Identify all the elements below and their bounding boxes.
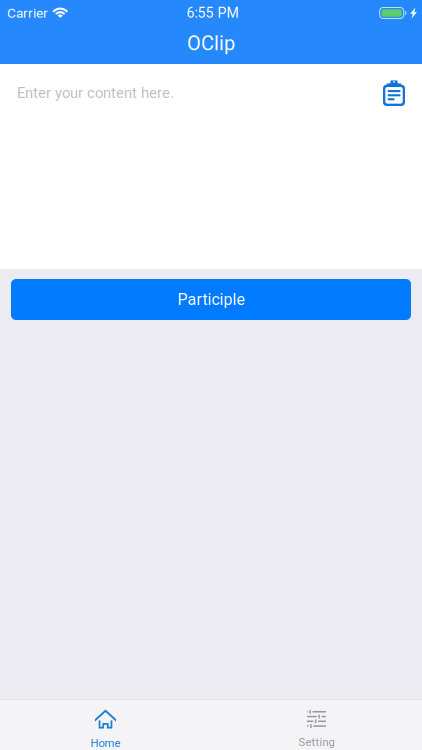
button[interactable]: Paste from clipboard <box>379 76 409 110</box>
staticText: Enter your content here. <box>17 84 174 102</box>
staticText: OClip <box>187 32 235 55</box>
staticText: Home <box>90 736 120 750</box>
staticText: Participle <box>177 290 244 309</box>
button[interactable]: Home <box>0 699 211 750</box>
staticText: Setting <box>298 735 334 749</box>
staticText: Carrier <box>7 5 48 21</box>
button[interactable]: Participle <box>11 279 411 320</box>
button[interactable]: Setting <box>211 699 422 750</box>
staticText: 6:55 PM <box>186 5 238 21</box>
